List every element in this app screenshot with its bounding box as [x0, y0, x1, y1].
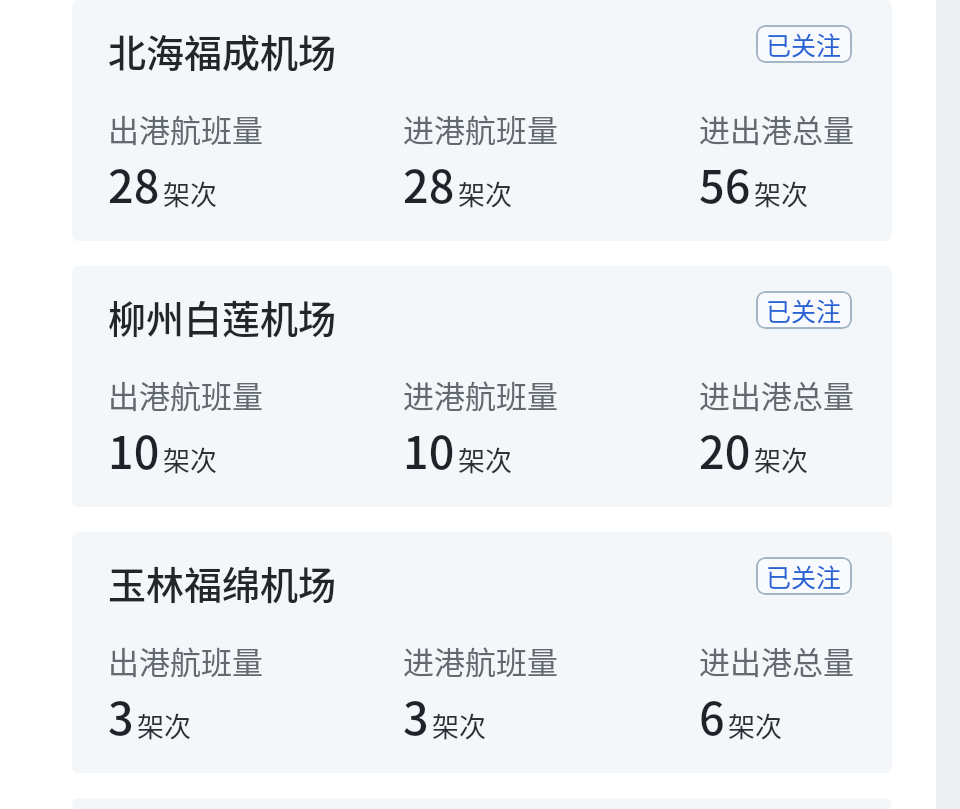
- staticText: 架次: [728, 706, 782, 745]
- staticText: 进出港总量: [699, 106, 854, 151]
- staticText: 架次: [754, 440, 808, 479]
- staticText: 出港航班量: [108, 372, 263, 417]
- staticText: 出港航班量: [108, 638, 263, 683]
- staticText: 28: [108, 151, 160, 216]
- staticText: 柳州白莲机场: [108, 289, 337, 344]
- staticText: 56: [699, 151, 751, 216]
- staticText: 3: [403, 683, 429, 748]
- staticText: 架次: [754, 174, 808, 213]
- staticText: 10: [403, 417, 455, 482]
- staticText: 进出港总量: [699, 372, 854, 417]
- staticText: 10: [108, 417, 160, 482]
- staticText: 北海福成机场: [108, 23, 337, 78]
- staticText: 架次: [432, 706, 486, 745]
- button[interactable]: 柳州白莲机场: [72, 266, 892, 507]
- staticText: 架次: [458, 440, 512, 479]
- staticText: 已关注: [766, 292, 842, 328]
- staticText: 28: [403, 151, 455, 216]
- staticText: 3: [108, 683, 134, 748]
- staticText: 出港航班量: [108, 106, 263, 151]
- staticText: 玉林福绵机场: [108, 555, 337, 610]
- staticText: 进港航班量: [403, 372, 558, 417]
- button[interactable]: 已关注: [756, 291, 852, 329]
- staticText: 20: [699, 417, 751, 482]
- staticText: 已关注: [766, 26, 842, 62]
- staticText: 架次: [163, 440, 217, 479]
- staticText: 架次: [163, 174, 217, 213]
- staticText: 进出港总量: [699, 638, 854, 683]
- staticText: 已关注: [766, 558, 842, 594]
- staticText: 架次: [137, 706, 191, 745]
- staticText: 进港航班量: [403, 638, 558, 683]
- button[interactable]: 玉林福绵机场: [72, 532, 892, 773]
- staticText: 进港航班量: [403, 106, 558, 151]
- button[interactable]: 已关注: [756, 25, 852, 63]
- button[interactable]: 北海福成机场: [72, 0, 892, 241]
- staticText: 6: [699, 683, 725, 748]
- button[interactable]: 已关注: [756, 557, 852, 595]
- staticText: 架次: [458, 174, 512, 213]
